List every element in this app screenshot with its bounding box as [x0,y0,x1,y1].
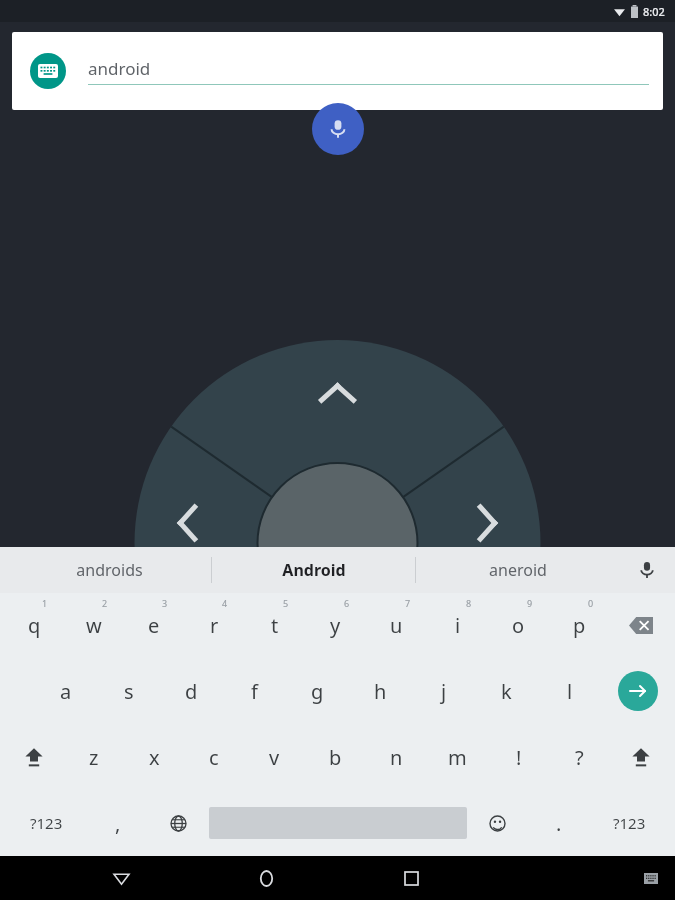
staticText: 2 [102,597,108,609]
button[interactable]: Shift [4,724,64,790]
button[interactable]: a [34,658,97,724]
button[interactable]: z [64,724,124,790]
button[interactable]: androids [8,547,211,593]
staticText: l [567,678,573,705]
staticText: w [86,612,102,639]
button[interactable]: q [4,593,64,658]
staticText: c [209,744,219,771]
button[interactable]: w [64,593,124,658]
button[interactable]: k [475,658,538,724]
staticText: Android [282,559,346,581]
staticText: q [28,612,41,639]
staticText: g [311,678,324,705]
button[interactable]: t [244,593,305,658]
button[interactable]: ? [549,724,610,790]
button[interactable]: f [223,658,286,724]
staticText: y [330,612,341,639]
staticText: , [115,810,121,837]
staticText: 4 [222,597,228,609]
button[interactable]: Keyboard [30,53,66,89]
staticText: d [185,678,198,705]
button[interactable]: s [97,658,160,724]
staticText: i [455,612,461,639]
staticText: 8:02 [643,4,665,19]
staticText: p [573,612,586,639]
button[interactable]: i [427,593,488,658]
staticText: 9 [527,597,533,609]
staticText: e [148,612,160,639]
button[interactable]: e [124,593,184,658]
staticText: k [501,678,512,705]
staticText: r [210,612,219,639]
button[interactable]: Backspace [610,593,671,658]
staticText: u [390,612,403,639]
button[interactable]: Change language [148,790,209,856]
staticText: 3 [162,597,168,609]
button[interactable]: b [305,724,366,790]
button[interactable]: . [528,790,589,856]
staticText: z [89,744,99,771]
button[interactable]: l [538,658,601,724]
button[interactable]: Keyboard indicator [631,858,671,898]
staticText: 0 [588,597,594,609]
staticText: o [512,612,525,639]
button[interactable]: ?123 [589,790,669,856]
staticText: a [60,678,72,705]
button[interactable]: ?123 [6,790,87,856]
button[interactable]: Search [601,658,675,724]
staticText: 8 [466,597,472,609]
button[interactable]: Emoji [467,790,528,856]
button[interactable]: aneroid [416,547,619,593]
button[interactable]: , [87,790,148,856]
staticText: t [271,612,279,639]
staticText: androids [76,559,143,581]
button[interactable]: c [184,724,244,790]
staticText: ?123 [613,813,646,833]
button[interactable]: h [349,658,412,724]
staticText: b [329,744,342,771]
staticText: 5 [283,597,289,609]
staticText: aneroid [489,559,547,581]
button[interactable]: Android [212,547,415,593]
button[interactable]: g [286,658,349,724]
button[interactable]: y [305,593,366,658]
button[interactable]: j [412,658,475,724]
staticText: 7 [405,597,411,609]
staticText: m [448,744,467,771]
staticText: . [556,810,562,837]
button[interactable]: x [124,724,184,790]
button[interactable]: Voice search [312,103,364,155]
button[interactable]: Back [98,856,144,900]
button[interactable]: u [366,593,427,658]
staticText: h [374,678,387,705]
button[interactable]: Voice input [619,547,675,593]
button[interactable]: v [244,724,305,790]
button[interactable]: n [366,724,427,790]
staticText: ?123 [30,813,63,833]
staticText: j [441,678,447,705]
button[interactable]: Keyboard [12,32,663,110]
button[interactable]: r [184,593,244,658]
button[interactable]: d [160,658,223,724]
staticText: f [251,678,258,705]
staticText: v [269,744,280,771]
button[interactable]: Shift [610,724,671,790]
staticText: ! [516,744,522,771]
staticText: 1 [42,597,48,609]
staticText: android [88,57,151,80]
staticText: n [390,744,403,771]
button[interactable]: p [549,593,610,658]
button[interactable]: ! [488,724,549,790]
staticText: s [124,678,134,705]
staticText: ? [575,744,584,771]
staticText: 6 [344,597,350,609]
button[interactable]: o [488,593,549,658]
staticText: x [149,744,160,771]
button[interactable]: Recents [388,856,434,900]
button[interactable]: Home [243,856,289,900]
button[interactable]: m [427,724,488,790]
